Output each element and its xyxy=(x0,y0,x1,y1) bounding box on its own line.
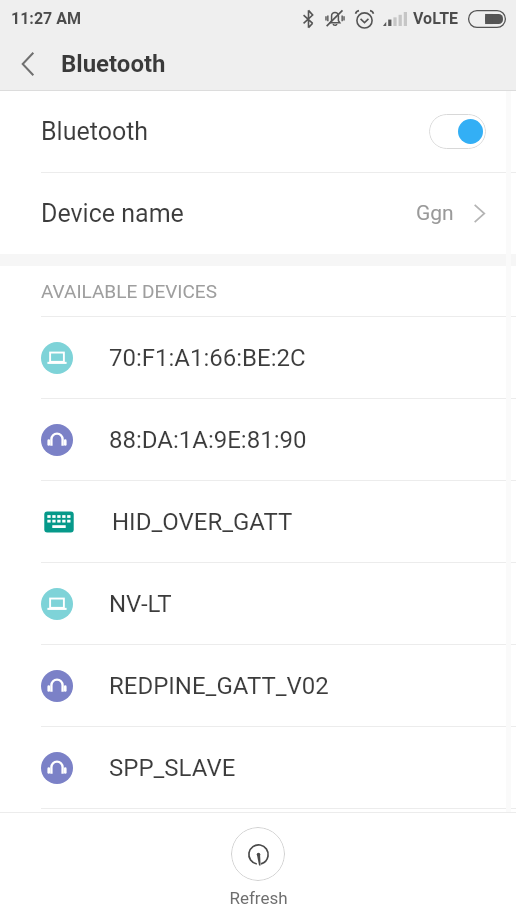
staticText: 70:F1:A1:66:BE:2C xyxy=(109,344,306,372)
button[interactable]: Bluetooth toggle xyxy=(429,114,486,149)
staticText: SPP_SLAVE xyxy=(109,754,236,782)
staticText: VoLTE xyxy=(413,9,459,28)
staticText: 88:DA:1A:9E:81:90 xyxy=(109,426,307,454)
staticText: NV-LT xyxy=(109,590,172,618)
button[interactable]: SPP_SLAVE xyxy=(0,727,516,808)
button[interactable]: Back xyxy=(0,36,56,91)
button[interactable]: 88:DA:1A:9E:81:90 xyxy=(0,399,516,480)
staticText: HID_OVER_GATT xyxy=(112,508,293,536)
button[interactable]: Bluetooth xyxy=(0,91,516,172)
staticText: Ggn xyxy=(416,201,454,226)
staticText: REDPINE_GATT_V02 xyxy=(109,672,329,700)
button[interactable]: NV-LT xyxy=(0,563,516,644)
staticText: Refresh xyxy=(229,888,288,908)
button[interactable]: Device name xyxy=(0,173,516,254)
button[interactable]: Refresh xyxy=(0,813,516,917)
staticText: 11:27 AM xyxy=(11,9,82,28)
staticText: AVAILABLE DEVICES xyxy=(41,280,516,302)
staticText: Bluetooth xyxy=(41,117,149,146)
staticText: Bluetooth xyxy=(61,50,166,78)
staticText: Device name xyxy=(41,199,184,228)
button[interactable]: REDPINE_GATT_V02 xyxy=(0,645,516,726)
button[interactable]: HID_OVER_GATT xyxy=(0,481,516,562)
button[interactable]: 70:F1:A1:66:BE:2C xyxy=(0,317,516,398)
